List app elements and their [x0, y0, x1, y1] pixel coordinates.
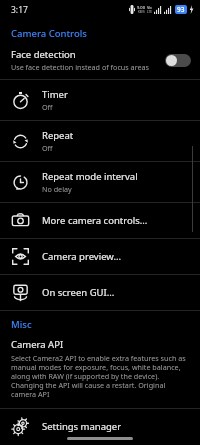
button[interactable]: More camera controls [0, 203, 200, 238]
other: On screen GUI [11, 283, 30, 302]
staticText: Off [42, 143, 53, 153]
staticText: Repeat [42, 129, 74, 142]
button[interactable]: Repeat [0, 121, 200, 161]
button[interactable]: Face detection [0, 47, 200, 79]
other: Timer [11, 91, 30, 110]
staticText: Select Camera2 API to enable extra featu… [11, 353, 190, 399]
staticText: 3:17 [11, 4, 28, 16]
staticText: KB/S [138, 10, 145, 14]
other: Repeat mode interval [11, 173, 30, 192]
staticText: Timer [42, 88, 68, 101]
staticText: Camera Controls [11, 27, 200, 40]
button[interactable]: Settings manager [0, 409, 200, 444]
staticText: Camera API [11, 338, 64, 351]
staticText: No delay [42, 184, 72, 194]
staticText: Use face detection instead of focus area… [11, 62, 149, 72]
button[interactable]: On screen GUI [0, 275, 200, 310]
staticText: Off [42, 102, 53, 112]
other: Camera preview [11, 247, 30, 266]
staticText: 93 [177, 5, 185, 14]
staticText: Vo [147, 5, 152, 10]
staticText: Repeat mode interval [42, 170, 138, 183]
staticText: Camera preview... [42, 250, 122, 263]
button[interactable]: Timer [0, 80, 200, 120]
staticText: LTE [147, 10, 152, 14]
button[interactable]: Camera API [0, 338, 200, 408]
staticText: On screen GUI... [42, 286, 115, 299]
other: Settings manager [11, 417, 30, 436]
button[interactable]: Camera preview [0, 239, 200, 274]
staticText: Face detection [11, 48, 76, 61]
staticText: 9.00 [137, 5, 145, 10]
button[interactable]: Repeat mode interval [0, 162, 200, 202]
other: Repeat [11, 132, 30, 151]
staticText: More camera controls... [42, 214, 148, 227]
staticText: Settings manager [42, 420, 122, 433]
other: More camera controls [11, 211, 30, 230]
staticText: Misc [11, 318, 200, 331]
